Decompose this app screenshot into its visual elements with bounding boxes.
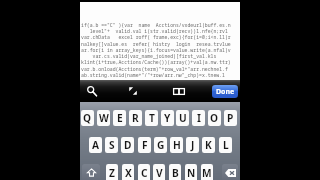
button[interactable]: F (138, 137, 151, 153)
button[interactable]: K (202, 137, 215, 153)
button[interactable]: X (122, 164, 134, 180)
staticText: K (205, 138, 212, 152)
staticText: O (210, 111, 219, 125)
staticText: var.b.onload(Acctions(term)"+row_val+"ar… (81, 66, 228, 73)
staticText: B (172, 166, 179, 180)
staticText: L (223, 138, 229, 152)
button[interactable]: Y (161, 110, 174, 126)
staticText: if(a.b =="C" ){var name Acctions/vxdeurl… (81, 22, 231, 29)
button[interactable]: T (145, 110, 158, 126)
button[interactable]: Bookmarks (170, 80, 188, 102)
button[interactable]: B (169, 164, 181, 180)
button[interactable]: U (176, 110, 189, 126)
staticText: Y (164, 111, 171, 125)
staticText: var.chData excel roff( frame,exc){for(i=… (81, 34, 231, 41)
button[interactable]: V (153, 164, 165, 180)
staticText: I (197, 111, 201, 125)
staticText: nalkey[]value.es refer( histry login res… (81, 41, 231, 48)
staticText: M (202, 166, 212, 180)
button[interactable]: J (186, 137, 199, 153)
button[interactable]: C (138, 164, 150, 180)
staticText: S (109, 138, 115, 152)
staticText: Q (83, 111, 92, 125)
staticText: R (132, 111, 139, 125)
button[interactable]: Shift (82, 164, 100, 180)
staticText: klint(i+true,Acctions/Cache())(array()+v… (81, 59, 231, 66)
button[interactable]: E (113, 110, 126, 126)
button[interactable]: Search (83, 80, 101, 102)
button[interactable]: H (170, 137, 183, 153)
staticText: H (173, 138, 181, 152)
staticText: Z (109, 166, 115, 180)
staticText: D (124, 138, 132, 152)
button[interactable]: D (121, 137, 134, 153)
button[interactable]: W (97, 110, 110, 126)
button[interactable]: S (105, 137, 118, 153)
staticText: ab.string.valid(name+"/"+row/arr.nw"_chp… (81, 72, 225, 79)
staticText: level"+ valid.val i(str.valid(recv))l.nf… (81, 28, 228, 35)
staticText: P (227, 111, 234, 125)
staticText: V (156, 166, 163, 180)
button[interactable]: A (89, 137, 102, 153)
staticText: ar.for(i in array_keys){i.focus=value.wr… (81, 47, 231, 54)
staticText: W (99, 111, 109, 125)
staticText: F (142, 138, 148, 152)
button[interactable]: R (129, 110, 142, 126)
button[interactable]: O (208, 110, 221, 126)
button[interactable]: P (224, 110, 237, 126)
button[interactable]: N (185, 164, 197, 180)
button[interactable]: G (154, 137, 167, 153)
button[interactable]: Q (81, 110, 94, 126)
button[interactable]: I (192, 110, 205, 126)
staticText: C (141, 166, 148, 180)
button[interactable]: M (201, 164, 213, 180)
button[interactable]: Backspace (222, 164, 238, 180)
staticText: N (187, 166, 196, 180)
staticText: E (117, 111, 123, 125)
staticText: A (92, 138, 100, 152)
button[interactable]: Expand (124, 80, 142, 102)
staticText: T (149, 111, 155, 125)
staticText: var.cs.valid(var_name_joined)[first_val.… (81, 53, 217, 60)
button[interactable]: Z (106, 164, 118, 180)
staticText: U (179, 111, 187, 125)
staticText: J (191, 138, 195, 152)
staticText: X (125, 166, 132, 180)
staticText: Done (216, 87, 235, 97)
staticText: G (157, 138, 165, 152)
button[interactable]: Done (212, 85, 238, 98)
button[interactable]: L (219, 137, 232, 153)
